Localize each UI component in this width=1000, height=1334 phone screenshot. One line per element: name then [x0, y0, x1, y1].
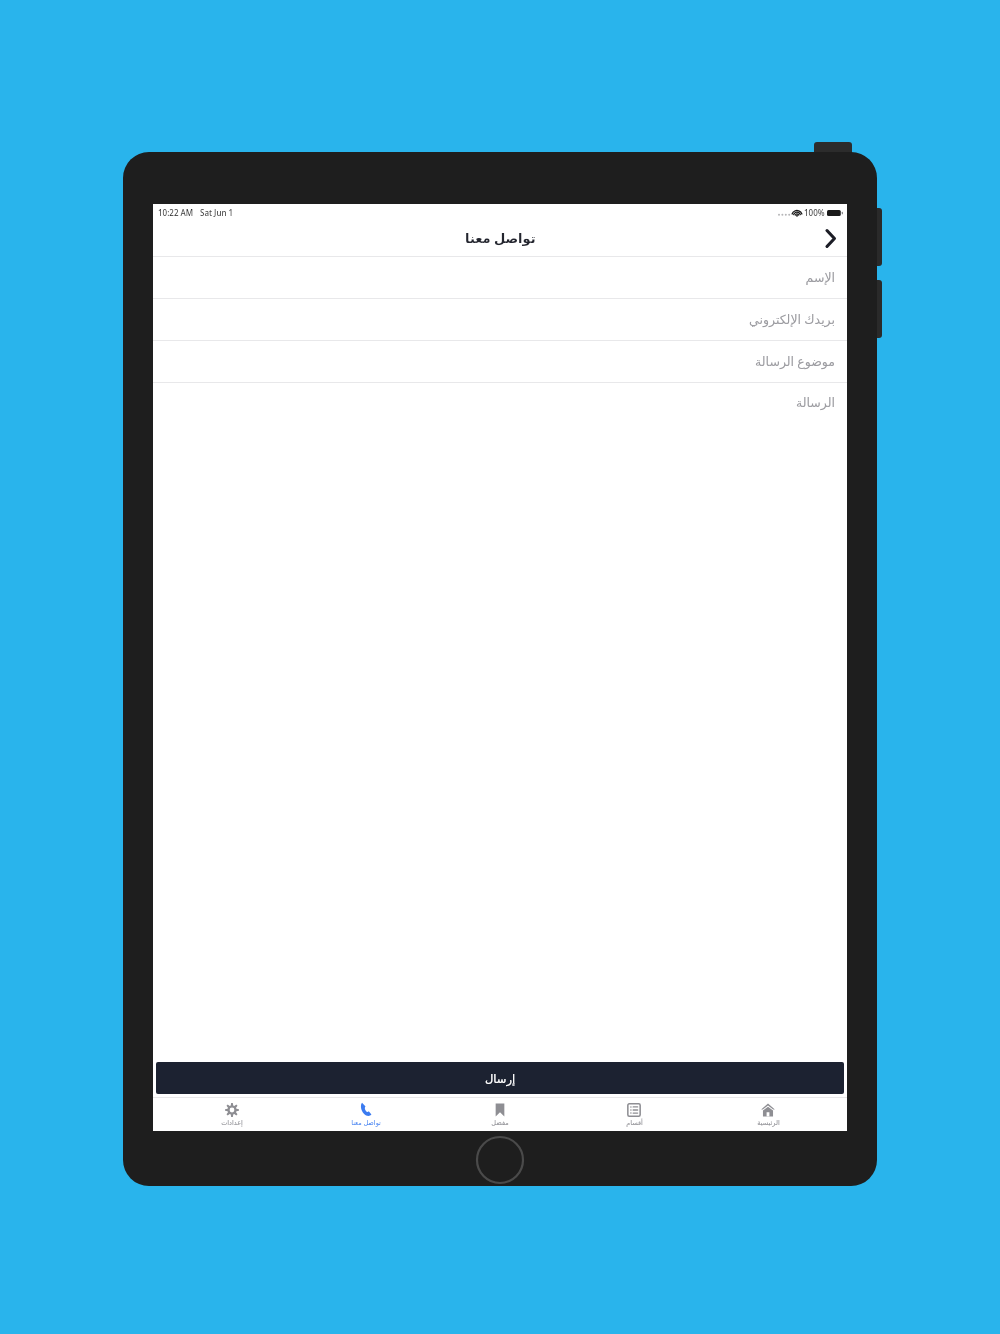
staticText: إعدادات — [221, 1119, 243, 1127]
staticText: الإسم — [805, 270, 835, 285]
staticText: أقسام — [626, 1119, 643, 1127]
button[interactable]: موضوع الرسالة — [153, 341, 847, 383]
staticText: مفضل — [491, 1119, 509, 1127]
button[interactable]: Contact us — [311, 1098, 421, 1131]
staticText: الرئيسية — [757, 1119, 780, 1127]
staticText: تواصل معنا — [465, 229, 536, 247]
button[interactable]: بريدك الإلكتروني — [153, 299, 847, 341]
staticText: تواصل معنا — [351, 1118, 381, 1127]
button[interactable]: Settings — [177, 1098, 287, 1131]
button[interactable]: الإسم — [153, 257, 847, 299]
staticText: بريدك الإلكتروني — [749, 311, 835, 328]
button[interactable]: Categories — [579, 1098, 689, 1131]
staticText: 10:22 AM — [158, 207, 194, 218]
staticText: Sat Jun 1 — [200, 207, 234, 218]
button[interactable]: إرسال — [156, 1062, 844, 1094]
staticText: إرسال — [485, 1072, 516, 1085]
button[interactable]: Favorites — [445, 1098, 555, 1131]
staticText: 100% — [804, 207, 825, 218]
button[interactable]: Home — [713, 1098, 823, 1131]
button[interactable]: رجوع — [813, 221, 847, 255]
staticText: الرسالة — [796, 395, 835, 410]
staticText: موضوع الرسالة — [755, 353, 835, 370]
